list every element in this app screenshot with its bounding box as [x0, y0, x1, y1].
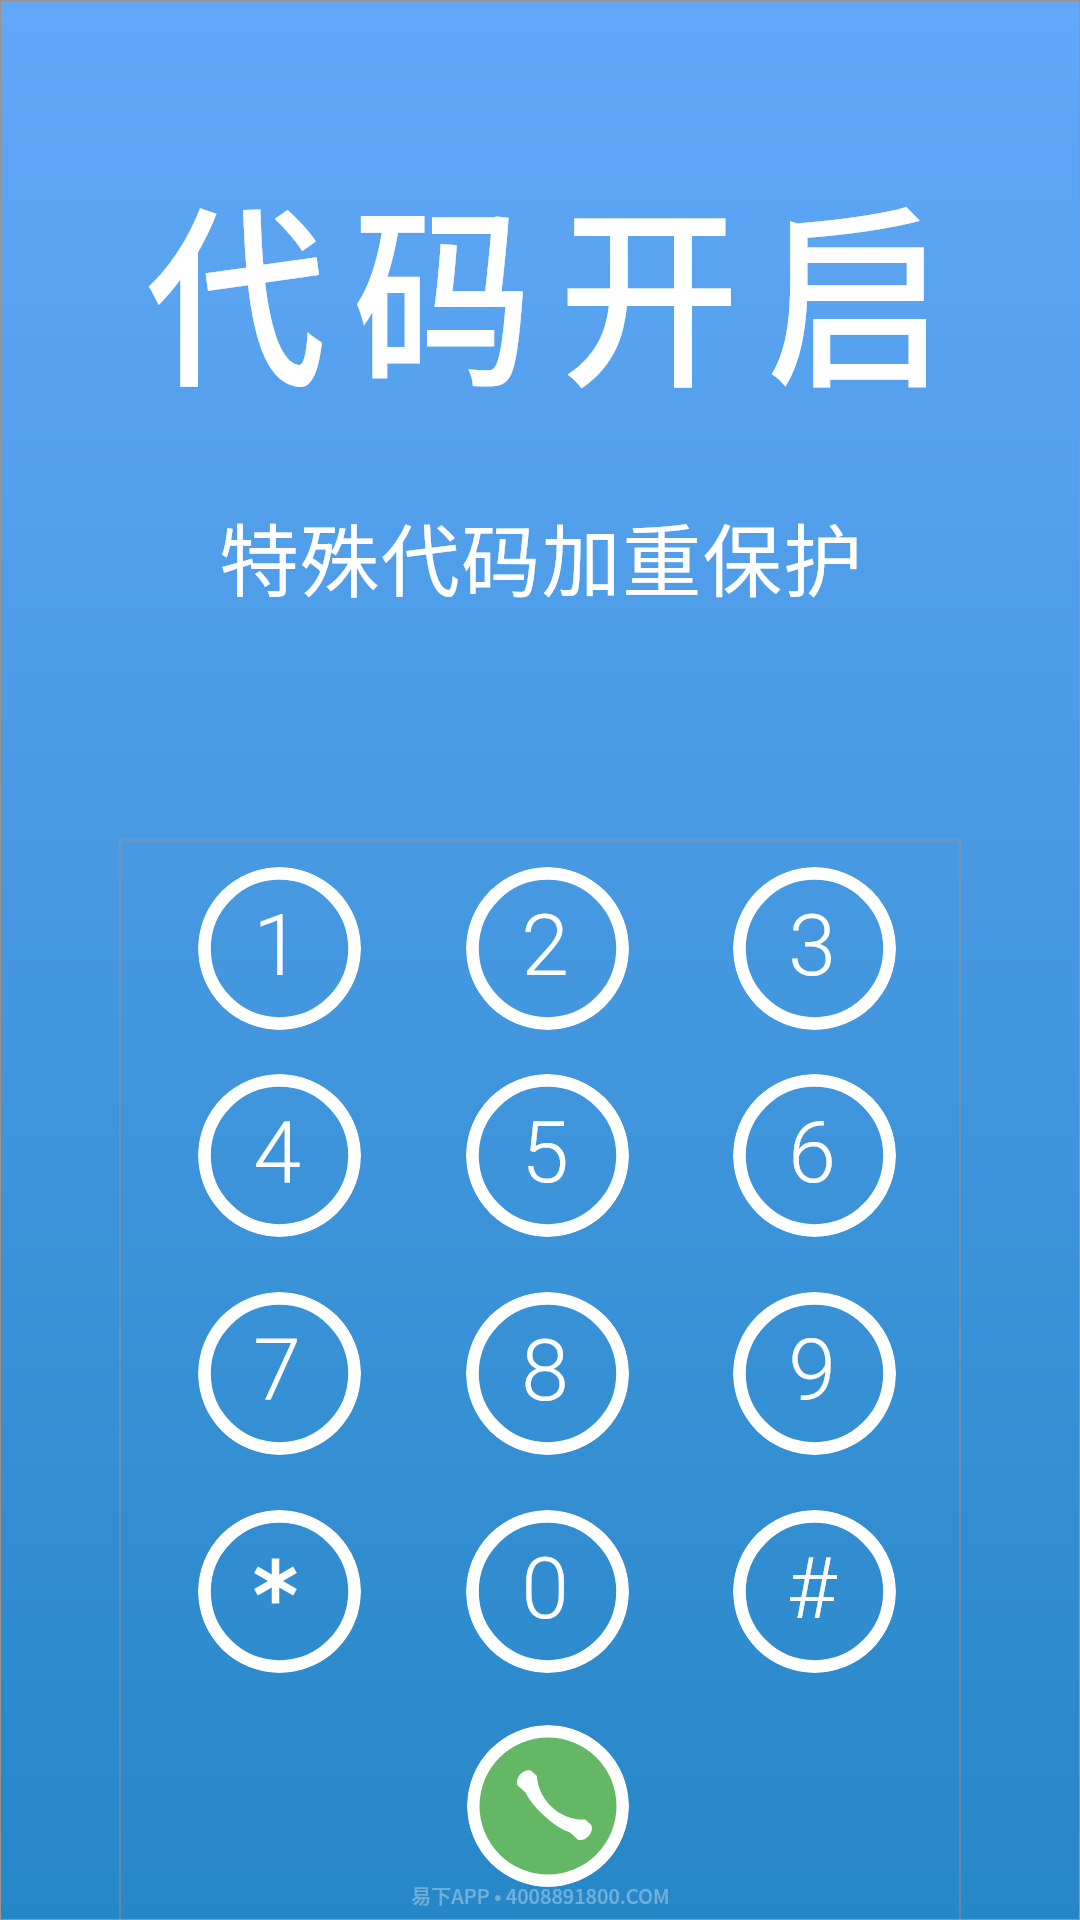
staticText: 8 — [521, 1320, 569, 1421]
button[interactable]: 4 — [198, 1074, 361, 1237]
staticText: 3 — [788, 895, 836, 996]
button[interactable]: 1 — [198, 867, 361, 1030]
button[interactable]: Call — [467, 1725, 629, 1887]
staticText: 0 — [521, 1538, 569, 1639]
button[interactable]: 8 — [466, 1292, 629, 1455]
staticText: 9 — [788, 1320, 836, 1421]
staticText: 5 — [521, 1102, 569, 1203]
button[interactable]: 6 — [733, 1074, 896, 1237]
button[interactable]: 5 — [466, 1074, 629, 1237]
button[interactable]: Star — [198, 1510, 361, 1673]
button[interactable]: 0 — [466, 1510, 629, 1673]
staticText: # — [786, 1538, 837, 1639]
staticText: 6 — [788, 1102, 836, 1203]
button[interactable]: 9 — [733, 1292, 896, 1455]
staticText: 易下APP • 4008891800.COM — [411, 1881, 670, 1910]
staticText: 7 — [253, 1320, 301, 1421]
staticText: 特殊代码加重保护 — [219, 499, 863, 613]
staticText: 1 — [253, 895, 301, 996]
staticText: 2 — [521, 895, 569, 996]
button[interactable]: Pound — [733, 1510, 896, 1673]
button[interactable]: 3 — [733, 867, 896, 1030]
button[interactable]: 2 — [466, 867, 629, 1030]
staticText: 4 — [253, 1102, 301, 1203]
button[interactable]: 7 — [198, 1292, 361, 1455]
staticText: 代码开启 — [133, 146, 959, 427]
